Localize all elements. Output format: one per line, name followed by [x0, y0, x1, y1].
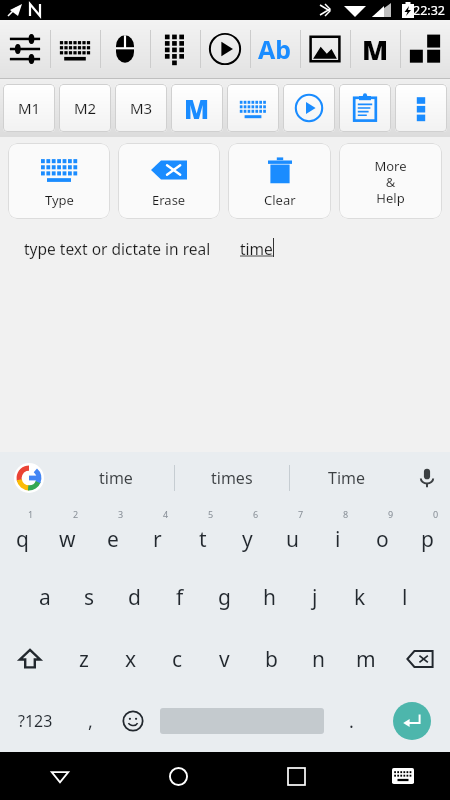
staticText: t — [199, 525, 207, 554]
button[interactable]: ab — [250, 20, 300, 78]
staticText: 1 — [28, 508, 34, 520]
button[interactable]: grid — [150, 20, 200, 78]
button[interactable]: time — [58, 452, 174, 504]
staticText: s — [84, 583, 95, 612]
staticText: m — [356, 645, 376, 674]
button[interactable]: Home — [119, 752, 237, 800]
staticText: 4 — [163, 508, 169, 520]
button[interactable]: Mblue — [171, 84, 223, 132]
button[interactable]: 2 — [45, 504, 90, 566]
staticText: M1 — [18, 98, 41, 118]
button[interactable]: More & Help — [339, 143, 442, 219]
staticText: type text or dictate in real — [24, 238, 215, 259]
staticText: c — [172, 645, 183, 674]
staticText: x — [125, 645, 137, 674]
staticText: z — [79, 645, 89, 674]
button[interactable]: 4 — [135, 504, 180, 566]
button[interactable]: z — [60, 628, 107, 690]
staticText: 2 — [73, 508, 79, 520]
button[interactable]: a — [22, 566, 67, 628]
button[interactable]: Voice input — [404, 452, 450, 504]
button[interactable]: . — [328, 690, 374, 752]
staticText: n — [312, 645, 325, 674]
button[interactable]: m — [342, 628, 389, 690]
staticText: M3 — [130, 98, 153, 118]
staticText: b — [265, 645, 278, 674]
button[interactable]: 7 — [270, 504, 315, 566]
button[interactable]: Shift — [0, 628, 60, 690]
staticText: o — [376, 525, 389, 554]
button[interactable]: v — [201, 628, 248, 690]
button[interactable]: , — [70, 690, 110, 752]
button[interactable]: Emoji — [110, 690, 156, 752]
staticText: e — [107, 525, 119, 554]
staticText: time — [99, 467, 133, 489]
button[interactable]: M3 — [115, 84, 167, 132]
button[interactable]: d — [112, 566, 157, 628]
button[interactable]: Clear — [228, 143, 331, 219]
staticText: p — [421, 525, 434, 554]
button[interactable]: Keyboard — [355, 752, 450, 800]
staticText: More & Help — [374, 157, 407, 206]
button[interactable]: 5 — [180, 504, 225, 566]
button[interactable]: M1 — [3, 84, 55, 132]
staticText: 22:32 — [413, 2, 445, 19]
button[interactable]: Back — [0, 752, 119, 800]
button[interactable]: g — [202, 566, 247, 628]
staticText: y — [242, 525, 253, 554]
staticText: Type — [45, 191, 74, 209]
button[interactable]: Google — [0, 452, 58, 504]
button[interactable]: k — [337, 566, 382, 628]
button[interactable]: 3 — [90, 504, 135, 566]
button[interactable]: Time — [289, 452, 404, 504]
button[interactable]: h — [247, 566, 292, 628]
button[interactable]: Recents — [237, 752, 355, 800]
staticText: 3 — [118, 508, 124, 520]
button[interactable]: image — [300, 20, 350, 78]
staticText: 0 — [433, 508, 439, 520]
button[interactable]: Enter — [374, 690, 450, 752]
staticText: i — [335, 525, 341, 554]
staticText: f — [176, 583, 184, 612]
button[interactable]: clip — [339, 84, 391, 132]
button[interactable]: M2 — [59, 84, 111, 132]
button[interactable]: f — [157, 566, 202, 628]
button[interactable]: j — [292, 566, 337, 628]
staticText: k — [354, 583, 366, 612]
button[interactable]: Backspace — [389, 628, 450, 690]
button[interactable]: times — [174, 452, 289, 504]
staticText: Time — [328, 467, 366, 489]
button[interactable]: n — [295, 628, 342, 690]
staticText: Ab — [258, 32, 292, 66]
button[interactable]: mouse — [100, 20, 150, 78]
button[interactable]: dots — [395, 84, 447, 132]
button[interactable]: 8 — [315, 504, 360, 566]
button[interactable]: ?123 — [0, 690, 70, 752]
staticText: l — [402, 583, 408, 612]
button[interactable]: Type — [8, 143, 110, 219]
staticText: . — [349, 709, 354, 734]
button[interactable]: b — [248, 628, 295, 690]
button[interactable]: 0 — [405, 504, 450, 566]
button[interactable]: kbdblue — [227, 84, 279, 132]
button[interactable]: sliders — [0, 20, 50, 78]
button[interactable]: 1 — [0, 504, 45, 566]
button[interactable]: s — [67, 566, 112, 628]
button[interactable]: x — [107, 628, 154, 690]
staticText: q — [16, 525, 29, 554]
button[interactable]: Erase — [118, 143, 220, 219]
button[interactable]: m — [350, 20, 400, 78]
button[interactable]: kbd — [50, 20, 100, 78]
button[interactable]: 6 — [225, 504, 270, 566]
staticText: w — [59, 525, 76, 554]
button[interactable]: l — [382, 566, 427, 628]
staticText: h — [263, 583, 276, 612]
button[interactable]: c — [154, 628, 201, 690]
staticText: d — [128, 583, 141, 612]
button[interactable]: mgrid — [400, 20, 450, 78]
button[interactable]: play — [200, 20, 250, 78]
button[interactable]: 9 — [360, 504, 405, 566]
staticText: g — [218, 583, 231, 612]
button[interactable]: playblue — [283, 84, 335, 132]
